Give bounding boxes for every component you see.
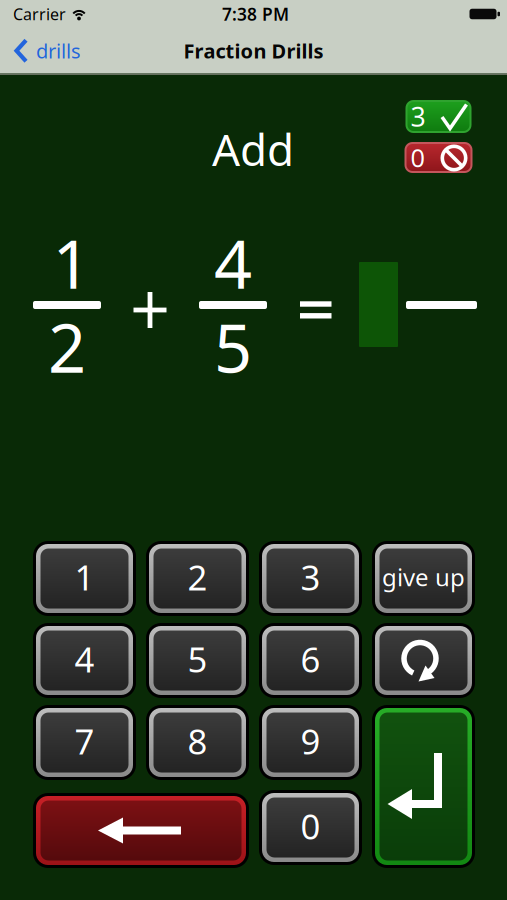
button[interactable]: 0 <box>259 790 362 865</box>
button[interactable]: Restart <box>372 623 475 698</box>
staticText: Carrier <box>13 3 66 25</box>
staticText: Add <box>212 120 294 178</box>
staticText: 9 <box>300 718 320 764</box>
staticText: 0 <box>300 803 320 849</box>
button[interactable]: give up <box>372 541 475 616</box>
button[interactable]: Enter answer <box>372 705 475 868</box>
staticText: 4 <box>74 636 94 682</box>
button[interactable]: 1 <box>33 541 136 616</box>
staticText: 1 <box>74 554 94 600</box>
button[interactable]: 9 <box>259 705 362 780</box>
staticText: 2 <box>187 554 207 600</box>
button[interactable]: 2 <box>146 541 249 616</box>
staticText: 4 <box>214 219 252 307</box>
button[interactable]: 8 <box>146 705 249 780</box>
staticText: 8 <box>187 718 207 764</box>
staticText: 5 <box>214 303 252 391</box>
button[interactable]: 3 <box>259 541 362 616</box>
staticText: 3 <box>300 554 320 600</box>
staticText: Fraction Drills <box>183 37 323 64</box>
button[interactable]: 6 <box>259 623 362 698</box>
staticText: 7 <box>74 718 94 764</box>
staticText: 1 <box>52 219 90 307</box>
staticText: 5 <box>187 636 207 682</box>
button[interactable]: Backspace <box>33 793 249 868</box>
staticText: 3 <box>410 99 425 134</box>
staticText: drills <box>36 37 81 64</box>
staticText: 6 <box>300 636 320 682</box>
button[interactable]: Back to drills <box>14 37 81 64</box>
staticText: 0 <box>410 141 424 174</box>
button[interactable]: 5 <box>146 623 249 698</box>
button[interactable]: 7 <box>33 705 136 780</box>
staticText: give up <box>382 561 465 593</box>
staticText: 7:38 PM <box>222 2 289 25</box>
button[interactable]: 4 <box>33 623 136 698</box>
staticText: 2 <box>48 303 86 391</box>
